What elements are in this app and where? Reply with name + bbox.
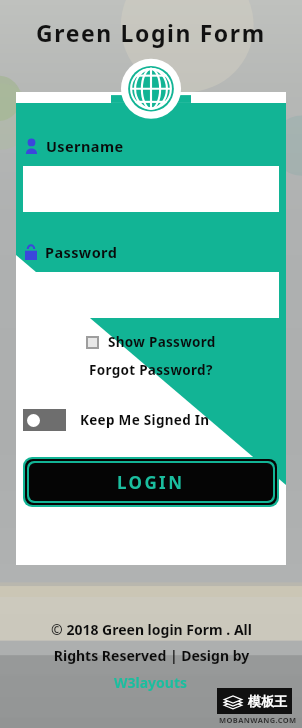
staticText: Password — [45, 242, 118, 262]
staticText: © 2018 Green login Form . All Rights Res… — [51, 620, 252, 666]
other: Globe — [111, 63, 191, 109]
staticText: LOGIN — [117, 471, 185, 494]
staticText: 模板王 — [248, 693, 287, 709]
staticText: W3layouts — [114, 673, 188, 692]
staticText: Username — [46, 136, 124, 156]
button[interactable]: LOGIN — [23, 457, 279, 507]
button[interactable]: Show Password — [16, 331, 286, 353]
staticText: Keep Me Signed In — [80, 411, 210, 429]
button[interactable]: W3layouts — [114, 673, 188, 692]
button[interactable]: Keep Me Signed In — [23, 409, 210, 431]
button[interactable]: Forgot Password? — [16, 361, 286, 379]
staticText: Green Login Form — [36, 17, 266, 48]
staticText: MOBANWANG.COM — [219, 715, 297, 725]
staticText: Show Password — [108, 333, 216, 351]
staticText: Forgot Password? — [89, 361, 213, 379]
